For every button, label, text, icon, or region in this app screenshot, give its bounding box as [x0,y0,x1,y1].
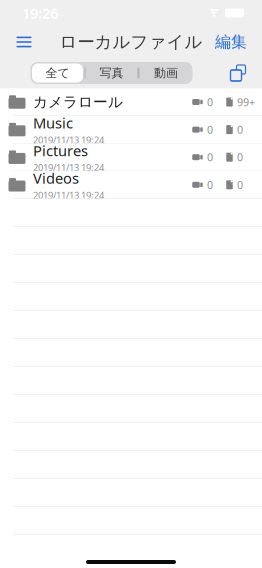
staticText: 編集 [215,32,247,52]
staticText: 0 [237,150,243,164]
staticText: 2019/11/13 19:24 [33,189,104,201]
button[interactable]: Music [0,116,262,144]
staticText: ローカルファイル [59,31,202,53]
button[interactable]: 写真 [84,62,138,84]
staticText: Music [33,113,73,133]
staticText: 写真 [99,66,123,80]
staticText: 0 [207,178,213,192]
button[interactable]: 編集 [203,26,259,58]
staticText: カメラロール [33,93,123,111]
staticText: 0 [237,178,243,192]
staticText: 0 [207,95,213,109]
staticText: 2019/11/13 19:24 [33,161,104,174]
button[interactable]: Pictures [0,144,262,171]
button[interactable]: 全て [30,62,84,84]
staticText: Videos [33,168,79,188]
staticText: 0 [207,150,213,164]
button[interactable]: Menu [3,26,45,58]
button[interactable]: Videos [0,171,262,199]
button[interactable]: Select multiple [223,60,253,86]
staticText: 全て [45,66,69,80]
staticText: 0 [207,122,213,137]
staticText: 2019/11/13 19:24 [33,134,104,146]
button[interactable]: 動画 [138,62,192,84]
staticText: Pictures [33,141,88,160]
staticText: 19:26 [22,3,58,23]
button[interactable]: カメラロール [0,88,262,116]
staticText: 0 [237,122,243,137]
staticText: 動画 [154,66,178,80]
staticText: 99+ [237,95,255,109]
